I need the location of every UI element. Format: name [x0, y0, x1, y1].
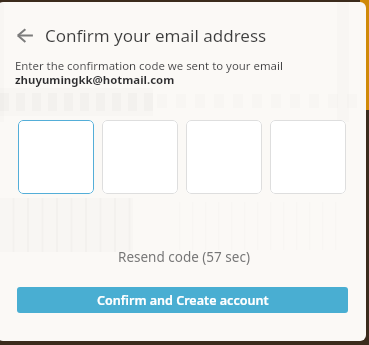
- button[interactable]: Code digit 1: [18, 120, 94, 194]
- button[interactable]: Back: [9, 21, 39, 51]
- staticText: Enter the confirmation code we sent to y…: [15, 58, 283, 74]
- button[interactable]: Confirm and Create account: [17, 287, 348, 313]
- button[interactable]: Code digit 3: [186, 120, 262, 194]
- staticText: Confirm and Create account: [97, 292, 269, 309]
- button[interactable]: Code digit 4: [270, 120, 346, 194]
- staticText: zhuyumingkk@hotmail.com: [15, 72, 175, 88]
- button[interactable]: Resend code (57 sec): [116, 246, 251, 268]
- staticText: Resend code (57 sec): [118, 248, 250, 266]
- staticText: Confirm your email address: [45, 24, 267, 47]
- button[interactable]: Code digit 2: [102, 120, 178, 194]
